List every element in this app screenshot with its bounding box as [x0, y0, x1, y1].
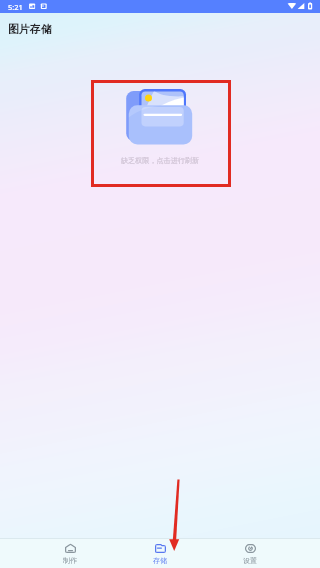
staticText: 制作 — [63, 556, 77, 565]
staticText: 5:21 — [8, 2, 23, 12]
button[interactable]: 设置 — [220, 538, 280, 568]
button[interactable]: 存储 — [130, 538, 190, 568]
staticText: 图片存储 — [8, 23, 52, 37]
button[interactable]: 制作 — [40, 538, 100, 568]
staticText: 缺乏权限，点击进行刷新 — [121, 156, 200, 165]
staticText: 存储 — [153, 556, 167, 565]
staticText: 设置 — [243, 556, 257, 565]
button[interactable]: 刷新 — [126, 88, 193, 146]
